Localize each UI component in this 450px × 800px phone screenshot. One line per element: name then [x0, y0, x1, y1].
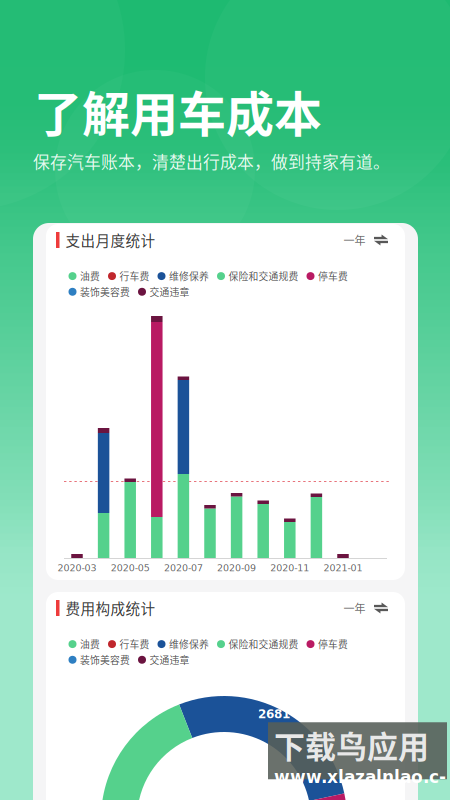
button[interactable]: 切换时间范围	[343, 597, 388, 619]
staticText: 费用构成统计	[65, 597, 155, 618]
staticText: 2020-11	[270, 562, 309, 574]
staticText: 了解用车成本	[34, 76, 322, 145]
staticText: 油费	[80, 269, 100, 283]
staticText: 保存汽车账本，清楚出行成本，做到持家有道。	[33, 149, 390, 173]
staticText: 2020-09	[217, 562, 256, 574]
staticText: 2020-07	[164, 562, 203, 574]
staticText: 维修保养	[169, 269, 209, 283]
staticText: 保险和交通规费	[228, 637, 298, 651]
staticText: 2681	[258, 707, 290, 721]
staticText: 交通违章	[149, 653, 189, 667]
button[interactable]: 切换时间范围	[343, 229, 388, 251]
staticText: 2020-05	[111, 562, 150, 574]
staticText: 2021-01	[323, 562, 362, 574]
staticText: 停车费	[318, 269, 348, 283]
staticText: 装饰美容费	[80, 285, 130, 299]
staticText: 行车费	[119, 269, 149, 283]
staticText: 2020-03	[57, 562, 96, 574]
staticText: 一年	[343, 600, 365, 616]
staticText: 一年	[343, 232, 365, 248]
staticText: 行车费	[119, 637, 149, 651]
staticText: 下载鸟应用	[274, 722, 429, 767]
staticText: 油费	[80, 637, 100, 651]
staticText: 保险和交通规费	[228, 269, 298, 283]
staticText: 交通违章	[149, 285, 189, 299]
staticText: 支出月度统计	[65, 229, 155, 250]
staticText: 维修保养	[169, 637, 209, 651]
staticText: 停车费	[318, 637, 348, 651]
staticText: 装饰美容费	[80, 653, 130, 667]
staticText: www.xlazalnlao.com	[274, 767, 446, 800]
